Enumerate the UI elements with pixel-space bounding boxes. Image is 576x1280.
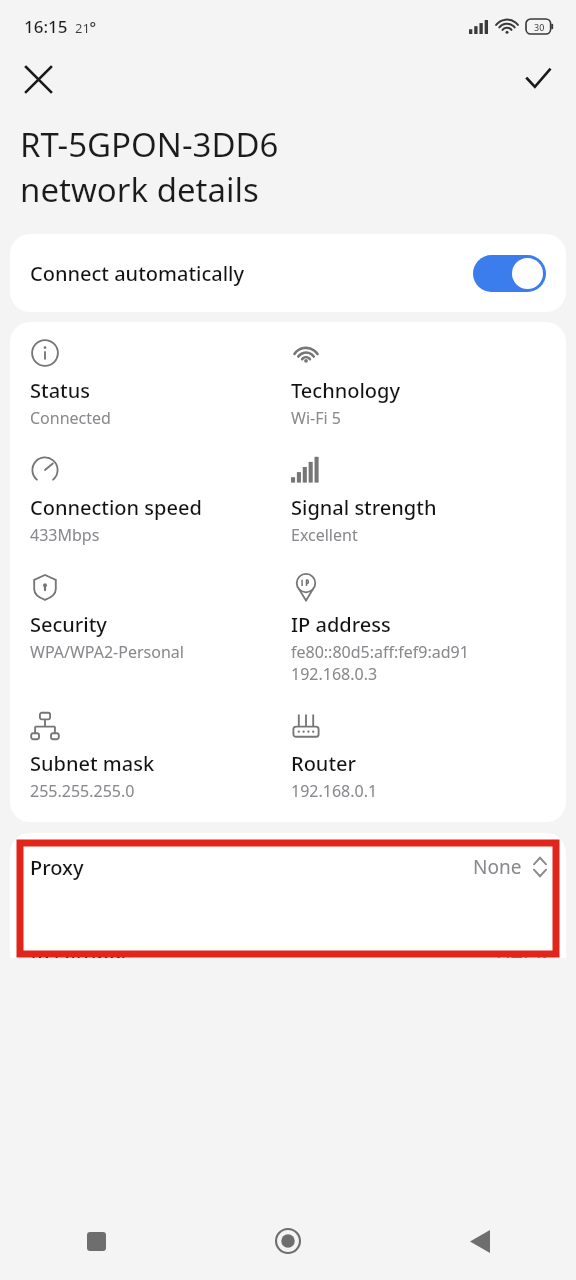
staticText: None	[473, 854, 522, 880]
staticText: network details	[20, 167, 259, 212]
staticText: WPA/WPA2-Personal	[30, 641, 184, 663]
staticText: Router	[291, 750, 356, 777]
staticText: 16:15	[24, 15, 68, 38]
staticText: Status	[30, 377, 91, 404]
staticText: Technology	[291, 377, 401, 404]
button[interactable]: Signal strength	[291, 455, 552, 546]
button[interactable]: Status	[30, 338, 291, 429]
button[interactable]: IP address	[291, 572, 552, 685]
button[interactable]: IP settings	[10, 945, 566, 958]
staticText: IP settings	[30, 945, 132, 958]
button[interactable]: Back	[384, 1202, 576, 1280]
staticText: Proxy	[30, 854, 84, 881]
staticText: 30	[534, 21, 545, 33]
button[interactable]: Router	[291, 711, 552, 802]
button[interactable]: Connection speed	[30, 455, 291, 546]
staticText: Signal strength	[291, 494, 437, 521]
button[interactable]: Security	[30, 572, 291, 663]
staticText: 192.168.0.1	[291, 780, 378, 802]
staticText: IP address	[291, 611, 391, 638]
staticText: Security	[30, 611, 107, 638]
staticText: Connect automatically	[30, 260, 245, 287]
button[interactable]: Connect automatically toggle	[473, 255, 546, 292]
staticText: 433Mbps	[30, 524, 100, 546]
button[interactable]: Subnet mask	[30, 711, 291, 802]
staticText: fe80::80d5:aff:fef9:ad91	[291, 641, 469, 663]
button[interactable]: Proxy	[10, 833, 566, 901]
staticText: Subnet mask	[30, 750, 155, 777]
staticText: Connection speed	[30, 494, 202, 521]
staticText: Excellent	[291, 524, 358, 546]
button[interactable]: Recent apps	[0, 1202, 192, 1280]
button[interactable]: Home	[192, 1202, 384, 1280]
staticText: Connected	[30, 407, 111, 429]
staticText: RT-5GPON-3DD6	[20, 122, 279, 167]
button[interactable]: Connect automatically	[10, 234, 566, 312]
staticText: 255.255.255.0	[30, 780, 135, 802]
button[interactable]: Technology	[291, 338, 552, 429]
staticText: Wi-Fi 5	[291, 407, 341, 429]
staticText: 21	[75, 19, 90, 37]
staticText: DHCP	[496, 945, 548, 958]
button[interactable]: Save	[514, 55, 562, 103]
button[interactable]: Cancel	[14, 55, 62, 103]
staticText: 192.168.0.3	[291, 663, 378, 685]
